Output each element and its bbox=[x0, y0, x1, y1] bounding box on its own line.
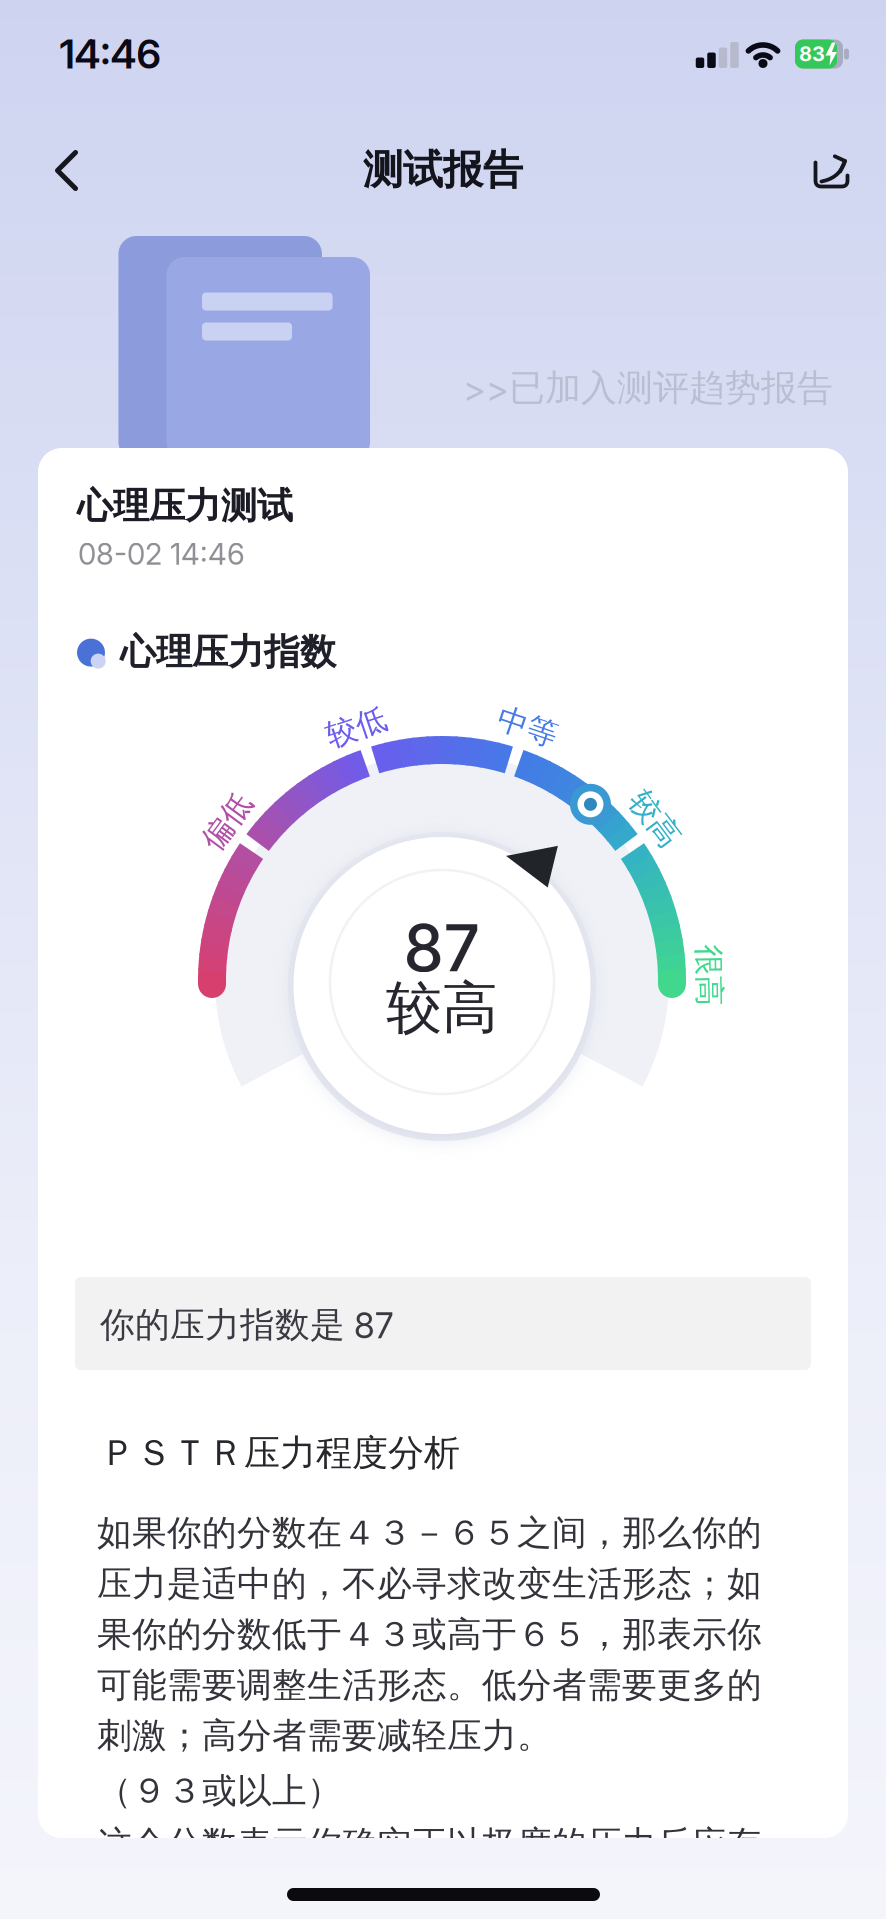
staticText: 较低 bbox=[325, 708, 387, 746]
staticText: 83 bbox=[799, 42, 825, 66]
staticText: 可能需要调整生活形态。低分者需要更多的 bbox=[97, 1664, 762, 1706]
staticText: 较高 bbox=[386, 974, 498, 1042]
staticText: 刺激；高分者需要减轻压力。 bbox=[97, 1714, 552, 1757]
staticText: 如果你的分数在４３－６５之间，那么你的 bbox=[97, 1512, 762, 1554]
staticText: 08-02 14:46 bbox=[78, 537, 245, 571]
staticText: 果你的分数低于４３或高于６５，那表示你 bbox=[97, 1613, 762, 1656]
staticText: ＰＳＴＲ压力程度分析 bbox=[100, 1431, 460, 1475]
staticText: >>已加入测评趋势报告 bbox=[463, 366, 833, 410]
staticText: 心理压力指数 bbox=[120, 630, 336, 674]
staticText: 87 bbox=[403, 910, 480, 986]
staticText: 偏低 bbox=[196, 803, 258, 840]
button[interactable]: >>已加入测评趋势报告 bbox=[463, 366, 833, 410]
staticText: 这个分数表示你确实正以极度的压力反应存 bbox=[97, 1823, 762, 1865]
staticText: 14:46 bbox=[59, 30, 160, 78]
staticText: 你的压力指数是 87 bbox=[100, 1304, 393, 1346]
staticText: 测试报告 bbox=[363, 145, 523, 194]
button[interactable]: 分享 bbox=[806, 148, 856, 194]
staticText: 很高 bbox=[678, 956, 740, 994]
staticText: （９３或以上） bbox=[97, 1770, 342, 1812]
staticText: 中等 bbox=[497, 708, 559, 746]
staticText: 心理压力测试 bbox=[77, 484, 293, 528]
button[interactable]: 返回 bbox=[46, 145, 92, 196]
staticText: 较高 bbox=[624, 800, 686, 838]
staticText: 压力是适中的，不必寻求改变生活形态；如 bbox=[97, 1562, 762, 1605]
